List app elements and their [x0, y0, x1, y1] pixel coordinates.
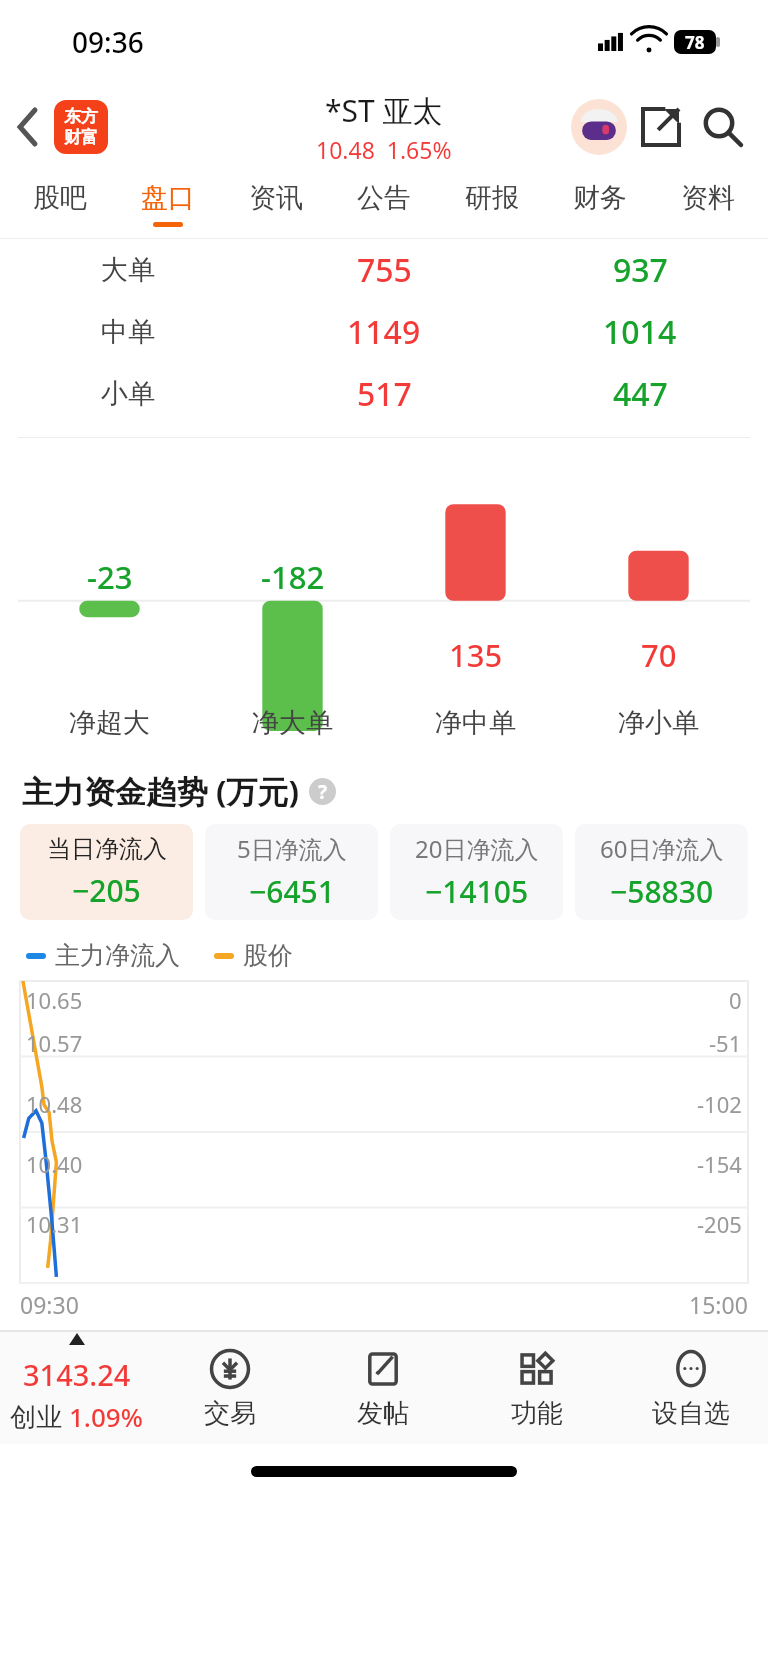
staticText: 大单	[101, 253, 155, 287]
staticText: 创业	[10, 1398, 69, 1434]
button[interactable]: 发帖	[306, 1332, 460, 1444]
staticText: 研报	[465, 181, 519, 215]
staticText: 15:00	[689, 1289, 748, 1320]
staticText: *ST 亚太	[325, 90, 443, 131]
staticText: -182	[261, 556, 325, 598]
staticText: 净中单	[435, 706, 516, 740]
staticText: 10.40	[26, 1149, 83, 1179]
staticText: 公告	[357, 181, 411, 215]
staticText: 东方	[64, 106, 98, 127]
staticText: 135	[449, 634, 503, 676]
button[interactable]: 公告	[330, 170, 438, 238]
button[interactable]: 盘口	[114, 170, 222, 238]
staticText: −14105	[425, 871, 529, 912]
staticText: 盘口	[141, 181, 195, 215]
button[interactable]: 20日净流入	[390, 824, 563, 920]
staticText: 财务	[573, 181, 627, 215]
button[interactable]: 当日净流入	[20, 824, 193, 920]
staticText: 755	[357, 248, 412, 292]
staticText: 09:30	[20, 1289, 79, 1320]
staticText: 功能	[511, 1397, 563, 1430]
staticText: 交易	[204, 1397, 256, 1430]
staticText: 60日净流入	[600, 832, 724, 865]
staticText: −205	[72, 870, 141, 911]
button[interactable]: Share	[630, 96, 692, 158]
button[interactable]: 研报	[438, 170, 546, 238]
staticText: -154	[697, 1149, 742, 1179]
staticText: 1149	[347, 310, 421, 354]
staticText: 517	[357, 372, 412, 416]
staticText: -102	[697, 1089, 742, 1119]
staticText: ?	[318, 779, 328, 805]
staticText: 发帖	[357, 1397, 409, 1430]
staticText: 财富	[64, 127, 98, 148]
button[interactable]: Back	[0, 84, 56, 170]
button[interactable]: 5日净流入	[205, 824, 378, 920]
staticText: 70	[641, 634, 677, 676]
staticText: 10.65	[26, 985, 83, 1015]
staticText: −58830	[610, 871, 714, 912]
button[interactable]: 股吧	[6, 170, 114, 238]
staticText: 资料	[681, 181, 735, 215]
staticText: 20日净流入	[415, 832, 539, 865]
button[interactable]: 3143.24	[0, 1332, 153, 1444]
button[interactable]: 60日净流入	[575, 824, 748, 920]
staticText: 主力净流入	[55, 940, 180, 971]
button[interactable]: AI assistant	[568, 96, 630, 158]
button[interactable]: 设自选	[614, 1332, 768, 1444]
button[interactable]: 交易	[153, 1332, 306, 1444]
button[interactable]: 资料	[654, 170, 762, 238]
staticText: 10.31	[26, 1209, 83, 1239]
staticText: 中单	[101, 315, 155, 349]
staticText: 净大单	[252, 706, 333, 740]
staticText: 447	[613, 372, 668, 416]
staticText: 5日净流入	[237, 832, 347, 865]
button[interactable]: 功能	[460, 1332, 614, 1444]
staticText: 资讯	[249, 181, 303, 215]
staticText: 0	[729, 985, 742, 1015]
staticText: 净超大	[69, 706, 150, 740]
staticText: 78	[685, 31, 705, 54]
staticText: 10.57	[26, 1028, 83, 1058]
staticText: 股吧	[33, 181, 87, 215]
staticText: -205	[697, 1209, 742, 1239]
staticText: 当日净流入	[47, 834, 167, 864]
button[interactable]: Search	[692, 96, 754, 158]
staticText: 小单	[101, 377, 155, 411]
button[interactable]: 财务	[546, 170, 654, 238]
staticText: 10.48	[26, 1089, 83, 1119]
button[interactable]: 资讯	[222, 170, 330, 238]
staticText: -51	[709, 1028, 742, 1058]
staticText: 主力资金趋势 (万元)	[22, 770, 300, 812]
staticText: -23	[87, 556, 133, 598]
staticText: −6451	[249, 871, 335, 912]
staticText: 净小单	[618, 706, 699, 740]
staticText: 设自选	[652, 1397, 730, 1430]
button[interactable]: East Money	[54, 100, 108, 154]
staticText: 1014	[603, 310, 677, 354]
staticText: 3143.24	[23, 1355, 131, 1394]
staticText: 09:36	[72, 23, 144, 61]
staticText: 股价	[243, 940, 293, 971]
staticText: 10.48 1.65%	[316, 134, 452, 165]
staticText: 937	[613, 248, 668, 292]
staticText: 1.09%	[69, 1399, 143, 1434]
button[interactable]: Help	[309, 778, 336, 805]
